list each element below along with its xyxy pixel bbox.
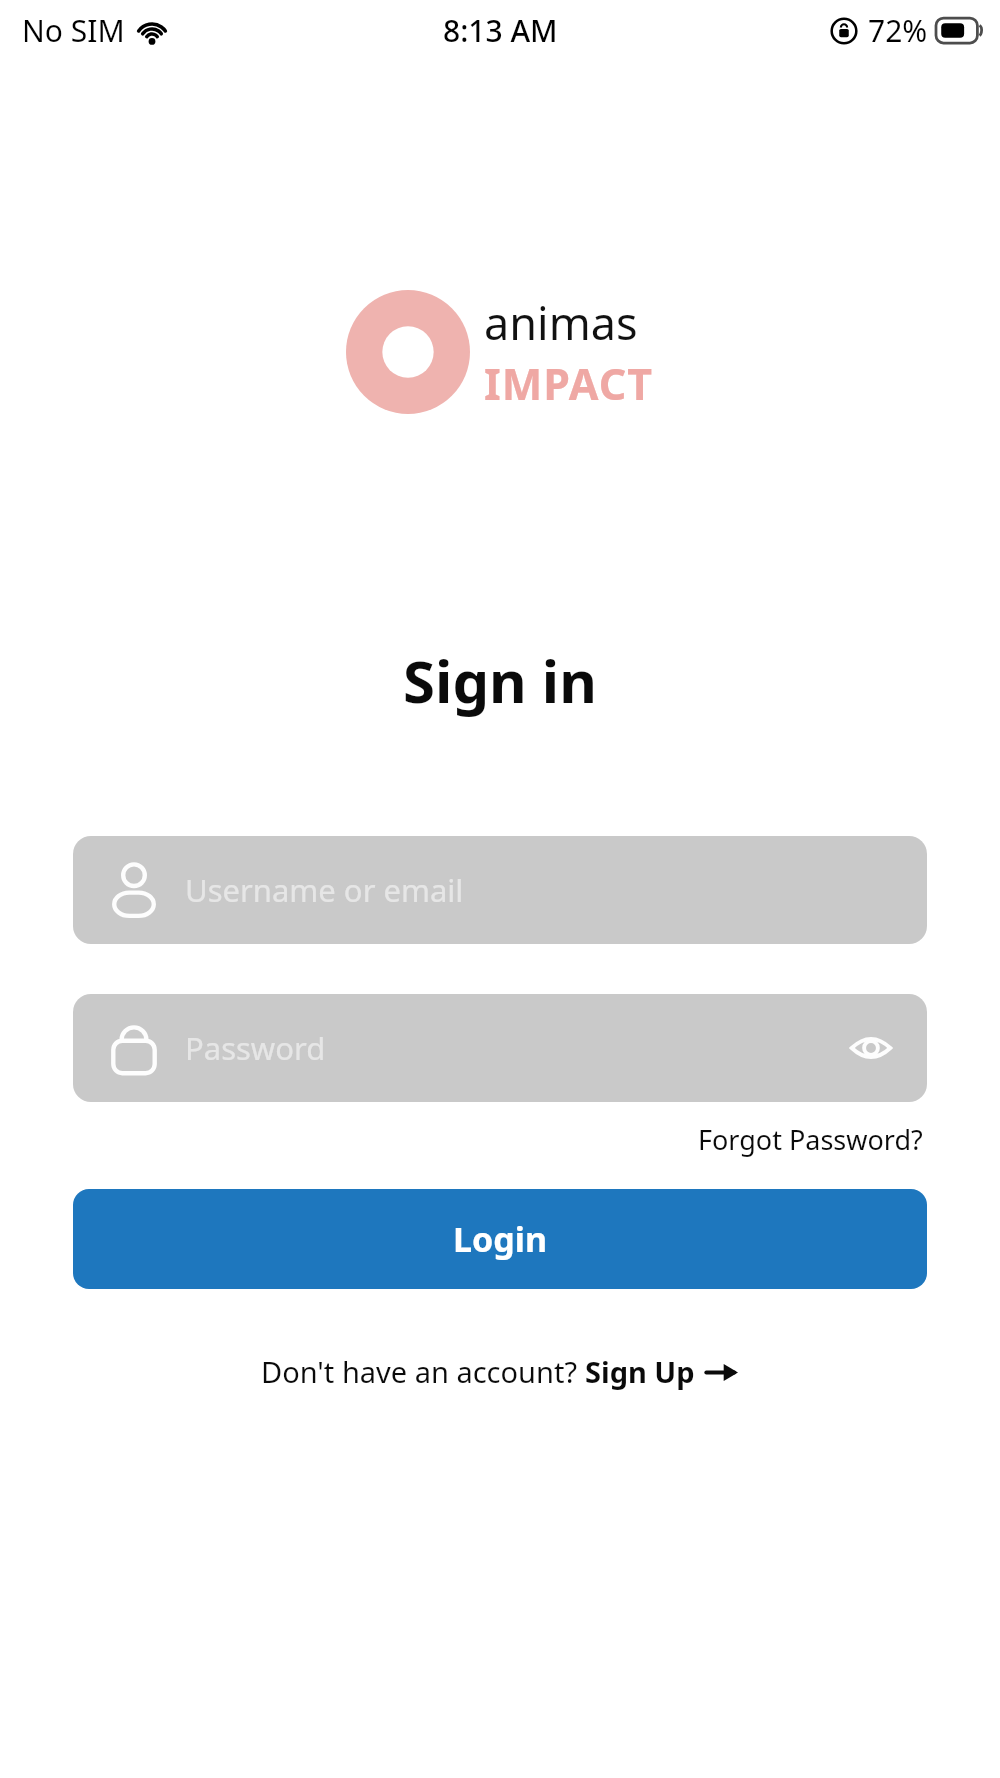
staticText: Forgot Password? [698, 1121, 923, 1158]
button[interactable]: Forgot Password? [694, 1117, 927, 1162]
staticText: IMPACT [484, 354, 654, 413]
staticText: Don't have an account? [261, 1352, 585, 1391]
staticText: No SIM [22, 10, 125, 51]
staticText: Password [185, 1027, 843, 1069]
staticText: Username or email [185, 869, 899, 911]
staticText: 72% [868, 10, 928, 51]
staticText: Login [453, 1216, 548, 1262]
staticText: Sign Up [585, 1352, 695, 1391]
staticText: 8:13 AM [443, 10, 558, 51]
button[interactable]: Username or email [73, 836, 927, 944]
button[interactable]: Show password [843, 1020, 899, 1076]
button[interactable]: Password [73, 994, 927, 1102]
button[interactable]: Don't have an account? [253, 1346, 747, 1397]
other: Sign Up [705, 1359, 739, 1385]
staticText: Sign in [403, 641, 597, 720]
button[interactable]: Login [73, 1189, 927, 1289]
staticText: animas [484, 292, 638, 353]
